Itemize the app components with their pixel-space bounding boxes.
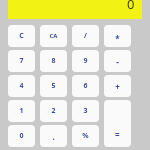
- staticText: 2: [51, 106, 56, 116]
- staticText: 1: [19, 106, 24, 116]
- staticText: 8: [51, 56, 56, 66]
- staticText: *: [115, 33, 120, 44]
- staticText: 9: [83, 56, 88, 66]
- staticText: /: [84, 31, 87, 41]
- button[interactable]: .: [40, 125, 67, 147]
- button[interactable]: 0: [8, 0, 142, 19]
- staticText: +: [115, 81, 120, 92]
- button[interactable]: CA: [40, 25, 67, 47]
- button[interactable]: C: [8, 25, 35, 47]
- staticText: 0: [127, 0, 135, 13]
- button[interactable]: 1: [8, 100, 35, 122]
- button[interactable]: +: [104, 75, 131, 97]
- button[interactable]: =: [104, 100, 131, 147]
- button[interactable]: 9: [72, 50, 99, 72]
- staticText: =: [115, 129, 120, 140]
- button[interactable]: 3: [72, 100, 99, 122]
- button[interactable]: 8: [40, 50, 67, 72]
- button[interactable]: /: [72, 25, 99, 47]
- staticText: CA: [49, 32, 58, 40]
- staticText: 4: [19, 81, 24, 91]
- button[interactable]: 2: [40, 100, 67, 122]
- button[interactable]: 7: [8, 50, 35, 72]
- staticText: 0: [19, 131, 24, 141]
- staticText: .: [52, 131, 55, 142]
- staticText: %: [82, 131, 89, 141]
- staticText: 3: [83, 106, 88, 116]
- button[interactable]: 5: [40, 75, 67, 97]
- button[interactable]: *: [104, 25, 131, 47]
- staticText: 5: [51, 81, 56, 91]
- staticText: C: [19, 31, 24, 41]
- button[interactable]: 6: [72, 75, 99, 97]
- staticText: -: [116, 56, 119, 67]
- button[interactable]: 4: [8, 75, 35, 97]
- button[interactable]: %: [72, 125, 99, 147]
- button[interactable]: -: [104, 50, 131, 72]
- staticText: 6: [83, 81, 88, 91]
- button[interactable]: 0: [8, 125, 35, 147]
- staticText: 7: [19, 56, 24, 66]
